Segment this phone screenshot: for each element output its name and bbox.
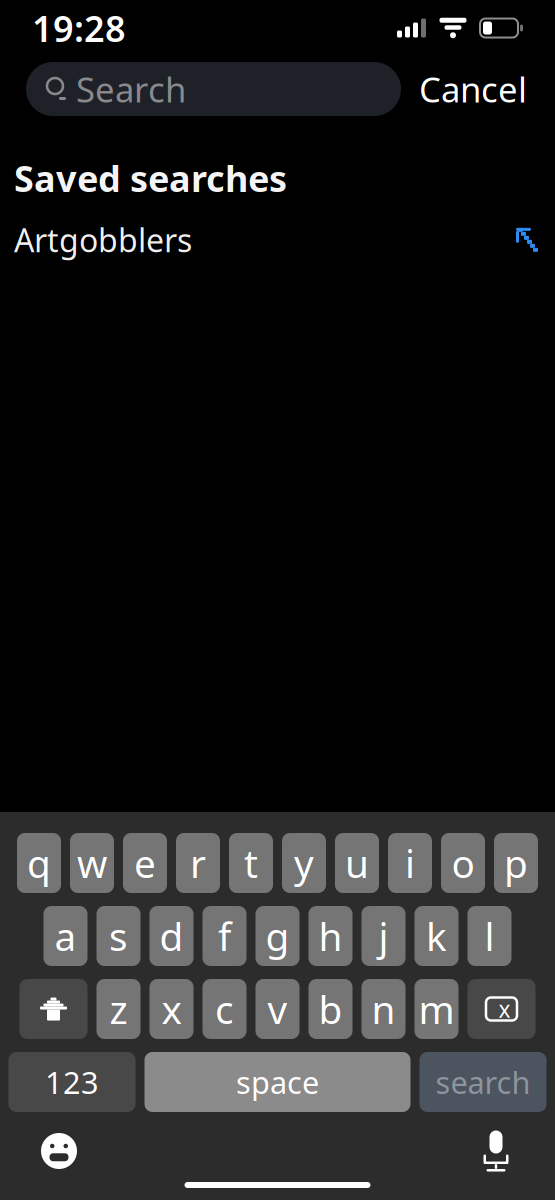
button[interactable]: s <box>96 906 140 966</box>
staticText: Saved searches <box>14 154 287 202</box>
button[interactable]: m <box>414 979 458 1039</box>
button[interactable]: e <box>123 833 167 893</box>
button[interactable]: g <box>255 906 299 966</box>
staticText: y <box>294 837 314 889</box>
staticText: l <box>484 910 494 962</box>
staticText: e <box>134 837 156 889</box>
button[interactable]: p <box>494 833 538 893</box>
button[interactable]: b <box>308 979 352 1039</box>
staticText: Cancel <box>419 66 527 112</box>
button[interactable]: Dictation <box>465 1126 527 1176</box>
staticText: t <box>244 837 258 889</box>
staticText: a <box>54 910 76 962</box>
button[interactable]: k <box>414 906 458 966</box>
button[interactable]: h <box>308 906 352 966</box>
staticText: f <box>218 910 231 962</box>
button[interactable]: space <box>144 1052 410 1112</box>
staticText: i <box>405 837 415 889</box>
button[interactable]: search <box>419 1052 546 1112</box>
button[interactable]: d <box>149 906 193 966</box>
staticText: q <box>27 837 51 889</box>
staticText: x <box>161 983 181 1035</box>
staticText: z <box>109 983 127 1035</box>
button[interactable]: y <box>282 833 326 893</box>
staticText: v <box>267 983 287 1035</box>
button[interactable]: Cancel <box>417 56 529 122</box>
button[interactable]: i <box>388 833 432 893</box>
button[interactable]: r <box>176 833 220 893</box>
button[interactable]: x <box>149 979 193 1039</box>
button[interactable]: Emoji <box>28 1126 90 1176</box>
staticText: o <box>451 837 474 889</box>
staticText: 123 <box>45 1062 99 1102</box>
staticText: w <box>77 837 107 889</box>
button[interactable]: Delete <box>467 979 535 1039</box>
staticText: k <box>426 910 447 962</box>
staticText: b <box>318 983 342 1035</box>
button[interactable]: a <box>43 906 87 966</box>
staticText: s <box>109 910 128 962</box>
staticText: x <box>498 994 510 1024</box>
staticText: p <box>504 837 528 889</box>
button[interactable]: Shift <box>19 979 87 1039</box>
staticText: c <box>215 983 234 1035</box>
button[interactable]: Artgobblers <box>0 212 555 268</box>
staticText: 19:28 <box>32 4 126 52</box>
button[interactable]: t <box>229 833 273 893</box>
staticText: u <box>345 837 369 889</box>
button[interactable]: q <box>17 833 61 893</box>
button[interactable]: 123 <box>8 1052 135 1112</box>
staticText: g <box>265 910 289 962</box>
staticText: Search <box>76 66 186 112</box>
button[interactable]: w <box>70 833 114 893</box>
staticText: h <box>318 910 342 962</box>
button[interactable]: v <box>255 979 299 1039</box>
staticText: d <box>159 910 183 962</box>
button[interactable]: j <box>361 906 405 966</box>
staticText: j <box>378 910 388 962</box>
staticText: search <box>435 1062 530 1102</box>
staticText: n <box>371 983 395 1035</box>
button[interactable]: n <box>361 979 405 1039</box>
staticText: space <box>236 1062 319 1102</box>
staticText: Artgobblers <box>14 219 192 261</box>
button[interactable]: l <box>467 906 511 966</box>
button[interactable]: u <box>335 833 379 893</box>
button[interactable]: Search <box>26 62 401 116</box>
button[interactable]: f <box>202 906 246 966</box>
button[interactable]: z <box>96 979 140 1039</box>
staticText: r <box>190 837 206 889</box>
staticText: m <box>418 983 454 1035</box>
button[interactable]: c <box>202 979 246 1039</box>
button[interactable]: o <box>441 833 485 893</box>
